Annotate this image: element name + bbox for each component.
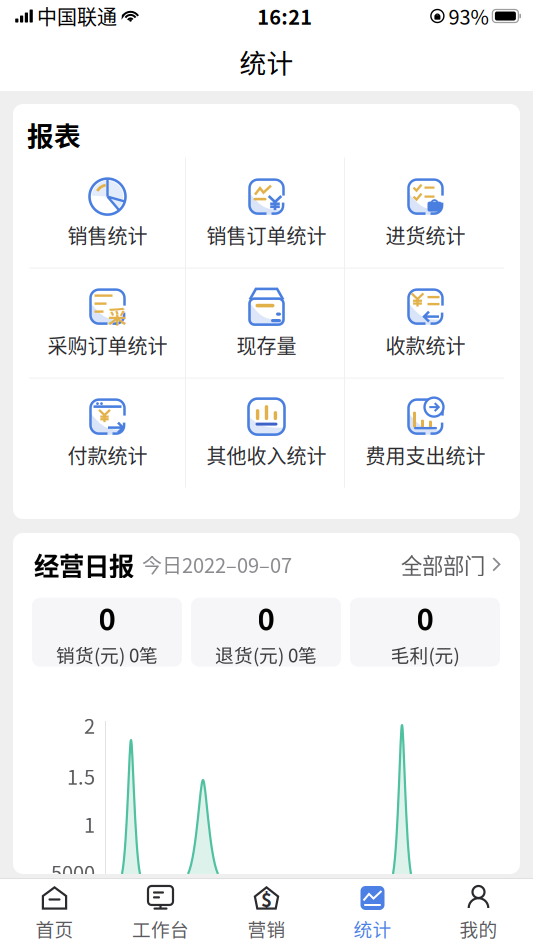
staticText: 毛利(元) [390, 641, 459, 668]
staticText: 5000 [51, 857, 95, 886]
staticText: 销售订单统计 [206, 221, 326, 250]
staticText: 工作台 [132, 915, 189, 942]
button[interactable]: 进货统计 [346, 158, 505, 268]
button[interactable]: 我的 [425, 878, 531, 949]
button[interactable]: 销售统计 [28, 158, 187, 268]
button[interactable]: 工作台 [107, 878, 213, 949]
staticText: 中国联通 [37, 1, 117, 30]
staticText: $ [261, 885, 272, 912]
button[interactable]: $ [213, 878, 319, 949]
staticText: 首页 [35, 915, 73, 942]
staticText: 16:21 [257, 1, 312, 30]
button[interactable]: 采 [28, 268, 187, 378]
button[interactable]: 其他收入统计 [187, 378, 346, 488]
staticText: 全部部门 [401, 549, 485, 580]
staticText: 销售统计 [67, 221, 147, 250]
button[interactable]: 全部部门 [401, 549, 501, 580]
staticText: 1.5 [67, 761, 95, 790]
staticText: 统计 [353, 915, 391, 942]
button[interactable]: 统计 [319, 878, 425, 949]
button[interactable]: 首页 [1, 878, 107, 949]
staticText: 其他收入统计 [206, 441, 326, 470]
staticText: 我的 [459, 915, 497, 942]
staticText: 0 [416, 596, 433, 639]
staticText: 销货(元) 0笔 [56, 641, 158, 668]
staticText: 0 [98, 596, 115, 639]
staticText: 报表 [27, 115, 81, 154]
staticText: 付款统计 [67, 441, 147, 470]
staticText: 费用支出统计 [365, 441, 485, 470]
staticText: 退货(元) 0笔 [215, 641, 317, 668]
staticText: 1 [84, 809, 95, 838]
button[interactable]: 现存量 [187, 268, 346, 378]
button[interactable]: 费用支出统计 [346, 378, 505, 488]
staticText: 93% [448, 1, 488, 30]
staticText: 营销 [247, 915, 285, 942]
staticText: 0 [257, 596, 274, 639]
staticText: 进货统计 [385, 221, 465, 250]
button[interactable]: 付款统计 [28, 378, 187, 488]
staticText: 统计 [239, 42, 293, 81]
staticText: 现存量 [236, 331, 296, 360]
staticText: 收款统计 [385, 331, 465, 360]
button[interactable]: 收款统计 [346, 268, 505, 378]
staticText: 采购订单统计 [47, 331, 167, 360]
staticText: 采 [108, 302, 127, 329]
button[interactable]: 销售订单统计 [187, 158, 346, 268]
staticText: 2 [84, 710, 95, 739]
staticText: 经营日报 [34, 546, 134, 583]
staticText: 今日2022–09–07 [142, 550, 292, 579]
